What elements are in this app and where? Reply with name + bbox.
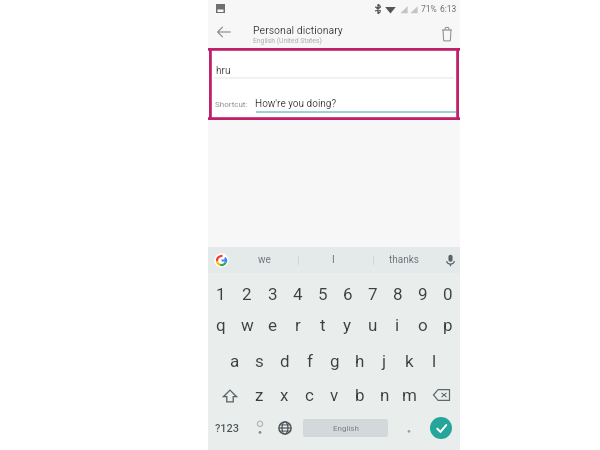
staticText: k [405,351,414,371]
button[interactable]: j [372,344,397,378]
staticText: 9 [418,284,428,304]
staticText: 6:13 [440,4,457,14]
staticText: I [332,254,335,266]
button[interactable]: o [410,308,435,342]
button[interactable]: h [347,344,372,378]
button[interactable]: 9 [410,277,435,311]
button[interactable]: Emoji [254,420,266,436]
button[interactable]: x [272,378,297,412]
staticText: s [255,351,264,371]
button[interactable]: we [236,247,292,273]
button[interactable]: 4 [285,277,310,311]
button[interactable]: 5 [310,277,335,311]
button[interactable]: c [297,378,322,412]
button[interactable]: m [397,378,422,412]
button[interactable]: Change language [278,421,292,435]
staticText: c [305,385,314,405]
staticText: z [255,385,264,405]
staticText: thanks [389,254,419,266]
staticText: l [432,351,437,371]
staticText: 5 [318,284,328,304]
button[interactable]: u [360,308,385,342]
staticText: ?123 [215,422,240,435]
staticText: English (United States) [253,37,322,45]
button[interactable]: Delete [441,26,453,42]
button[interactable]: Backspace [422,378,460,412]
staticText: v [330,385,339,405]
staticText: i [395,315,400,335]
button[interactable]: s [247,344,272,378]
button[interactable]: 8 [385,277,410,311]
staticText: y [343,315,352,335]
staticText: 2 [242,284,252,304]
staticText: h [355,351,365,371]
staticText: j [382,351,387,371]
staticText: hru [216,65,231,77]
button[interactable]: i [385,308,410,342]
button[interactable]: v [322,378,347,412]
button[interactable]: g [322,344,347,378]
staticText: t [320,315,326,335]
staticText: How're you doing? [255,98,337,110]
button[interactable]: e [260,308,285,342]
button[interactable]: English [303,419,388,437]
staticText: 7 [368,284,378,304]
button[interactable]: 0 [435,277,460,311]
staticText: p [443,315,453,335]
staticText: 3 [268,284,278,304]
button[interactable]: Back [216,24,232,40]
staticText: u [368,315,378,335]
button[interactable]: z [247,378,272,412]
button[interactable]: 2 [234,277,260,311]
staticText: English [333,424,359,433]
button[interactable]: w [234,308,260,342]
staticText: x [280,385,289,405]
button[interactable]: Shift [208,378,247,412]
button[interactable]: y [335,308,360,342]
staticText: Personal dictionary [253,24,343,36]
staticText: a [230,351,240,371]
staticText: Shortcut: [215,100,248,109]
staticText: f [307,351,313,371]
button[interactable]: l [422,344,447,378]
staticText: o [418,315,428,335]
staticText: w [241,315,254,335]
button[interactable]: Done [430,417,452,439]
button[interactable]: I [305,247,361,273]
staticText: 0 [443,284,453,304]
staticText: m [402,385,417,405]
staticText: 8 [393,284,403,304]
button[interactable]: b [347,378,372,412]
button[interactable]: a [222,344,247,378]
button[interactable]: Google [214,253,229,268]
staticText: we [258,254,271,266]
staticText: g [330,351,340,371]
staticText: n [380,385,390,405]
button[interactable]: r [285,308,310,342]
staticText: q [216,315,226,335]
button[interactable]: Period [402,421,416,435]
button[interactable]: thanks [376,247,432,273]
button[interactable]: d [272,344,297,378]
button[interactable]: 6 [335,277,360,311]
button[interactable]: k [397,344,422,378]
staticText: 4 [293,284,303,304]
staticText: b [355,385,365,405]
button[interactable]: 3 [260,277,285,311]
staticText: e [268,315,278,335]
button[interactable]: 7 [360,277,385,311]
button[interactable]: q [208,308,234,342]
button[interactable]: f [297,344,322,378]
button[interactable]: n [372,378,397,412]
button[interactable]: Voice input [446,254,455,267]
button[interactable]: t [310,308,335,342]
button[interactable]: p [435,308,460,342]
staticText: d [280,351,290,371]
staticText: r [295,315,301,335]
button[interactable]: ?123 [215,422,240,435]
staticText: 6 [343,284,353,304]
button[interactable]: 1 [208,277,234,311]
staticText: 1 [216,284,226,304]
staticText: 71% [421,4,437,14]
